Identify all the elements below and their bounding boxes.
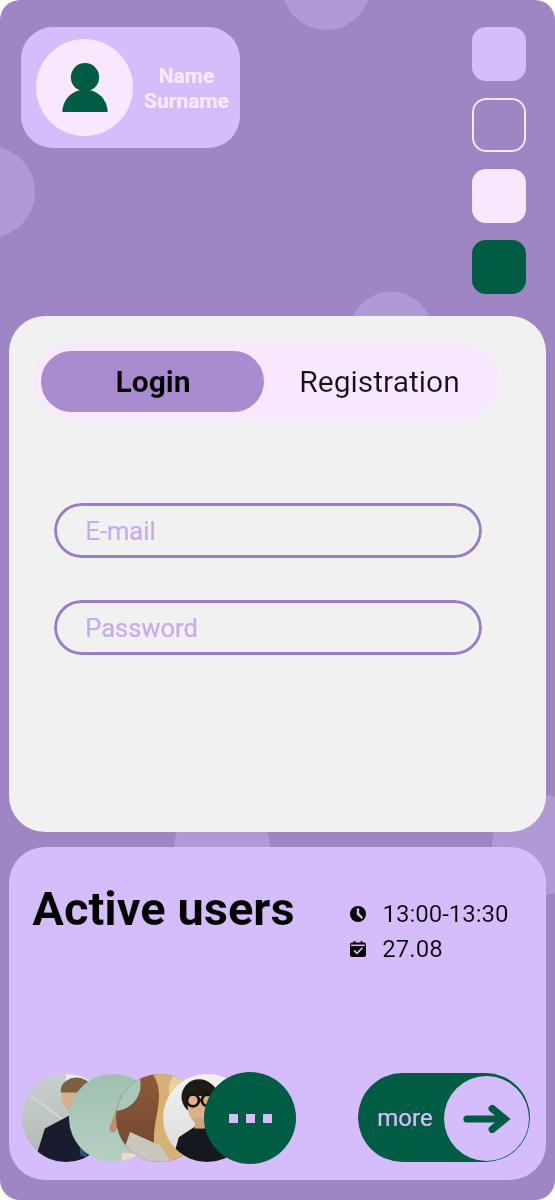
button[interactable]: User avatar — [69, 1074, 157, 1162]
staticText: Registration — [299, 364, 460, 399]
button[interactable]: More users — [204, 1072, 296, 1164]
button[interactable]: Green colour — [472, 240, 526, 294]
button[interactable]: Password — [54, 600, 482, 655]
button[interactable]: E-mail — [54, 503, 482, 558]
button[interactable]: White colour — [472, 169, 526, 223]
button[interactable]: Registration — [266, 351, 493, 412]
staticText: 13:00-13:30 — [382, 900, 509, 928]
staticText: 27.08 — [382, 935, 443, 963]
button[interactable]: User avatar — [116, 1074, 204, 1162]
button[interactable]: Lavender colour — [472, 27, 526, 81]
button[interactable]: No colour — [472, 98, 526, 152]
staticText: Password — [85, 613, 198, 643]
staticText: Login — [115, 364, 191, 399]
staticText: more — [377, 1104, 433, 1132]
button[interactable]: Name Surname — [21, 27, 240, 148]
staticText: E-mail — [85, 516, 156, 546]
button[interactable]: more — [358, 1073, 530, 1162]
staticText: Active users — [32, 881, 295, 936]
button[interactable]: User avatar — [163, 1074, 251, 1162]
staticText: Name Surname — [144, 64, 229, 114]
button[interactable]: User avatar — [22, 1074, 110, 1162]
button[interactable]: Login — [41, 351, 264, 412]
